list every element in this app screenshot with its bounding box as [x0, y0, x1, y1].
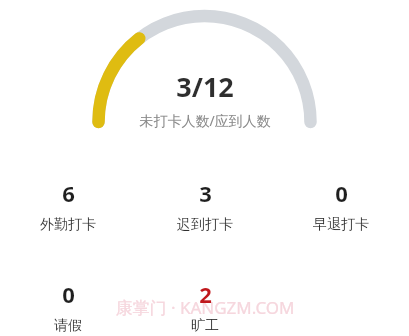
- staticText: 外勤打卡: [40, 216, 96, 234]
- button[interactable]: 0: [0, 279, 136, 335]
- button[interactable]: 0: [273, 178, 409, 234]
- staticText: 迟到打卡: [177, 216, 233, 234]
- button[interactable]: 2: [137, 279, 273, 335]
- staticText: 0: [335, 178, 348, 208]
- staticText: 6: [62, 178, 75, 208]
- staticText: 康掌门 · KANGZM.COM: [115, 296, 295, 319]
- staticText: 3/12: [176, 68, 234, 105]
- staticText: 3: [199, 178, 212, 208]
- staticText: 0: [62, 279, 75, 309]
- staticText: 旷工: [191, 317, 219, 335]
- staticText: 早退打卡: [313, 216, 369, 234]
- button[interactable]: 6: [0, 178, 136, 234]
- staticText: 2: [199, 279, 212, 309]
- staticText: 请假: [54, 317, 82, 335]
- button[interactable]: 3: [137, 178, 273, 234]
- staticText: 未打卡人数/应到人数: [139, 111, 271, 130]
